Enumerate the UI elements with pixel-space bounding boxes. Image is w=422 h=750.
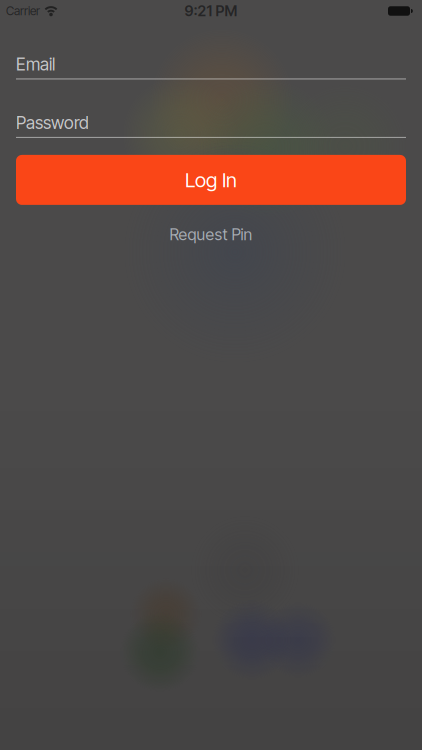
- button[interactable]: Password: [0, 112, 422, 138]
- staticText: Email: [16, 54, 55, 74]
- button[interactable]: Email: [0, 54, 422, 79]
- staticText: Request Pin: [169, 225, 252, 244]
- staticText: Carrier: [6, 4, 40, 18]
- staticText: Log In: [185, 168, 237, 192]
- staticText: Password: [16, 112, 89, 133]
- button[interactable]: Request Pin: [169, 225, 252, 244]
- button[interactable]: Log In: [0, 155, 422, 205]
- staticText: 9:21 PM: [184, 2, 237, 20]
